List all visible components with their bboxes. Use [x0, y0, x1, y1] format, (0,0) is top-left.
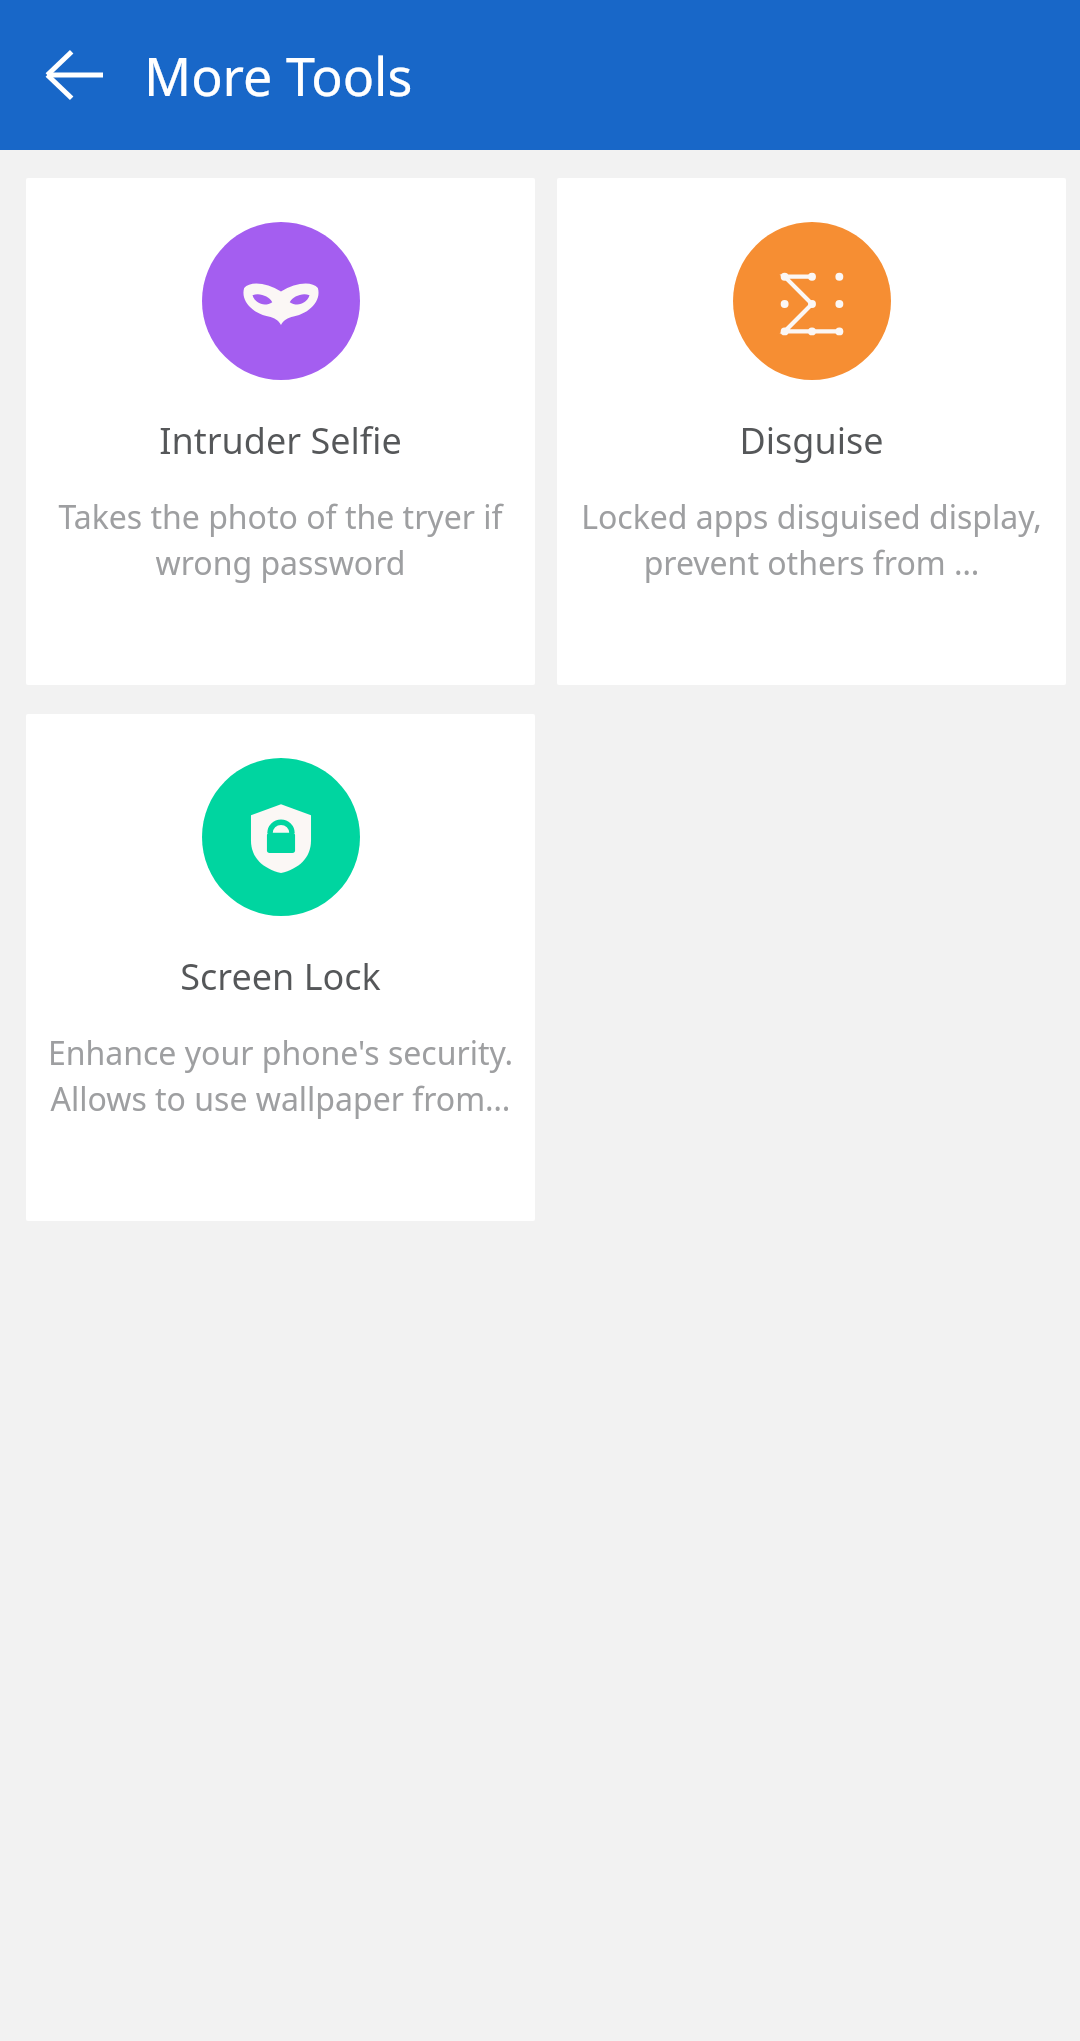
staticText: Enhance your phone's security. Allows to… [46, 1031, 515, 1120]
button[interactable]: Intruder Selfie [26, 178, 535, 685]
staticText: Disguise [739, 416, 884, 465]
staticText: More Tools [144, 40, 413, 111]
button[interactable]: Disguise [557, 178, 1066, 685]
staticText: Takes the photo of the tryer if wrong pa… [46, 495, 515, 584]
button[interactable]: Screen Lock [26, 714, 535, 1221]
staticText: Screen Lock [180, 952, 381, 1001]
staticText: Locked apps disguised display, prevent o… [577, 495, 1046, 584]
button[interactable]: Back [36, 37, 112, 113]
staticText: Intruder Selfie [159, 416, 402, 465]
